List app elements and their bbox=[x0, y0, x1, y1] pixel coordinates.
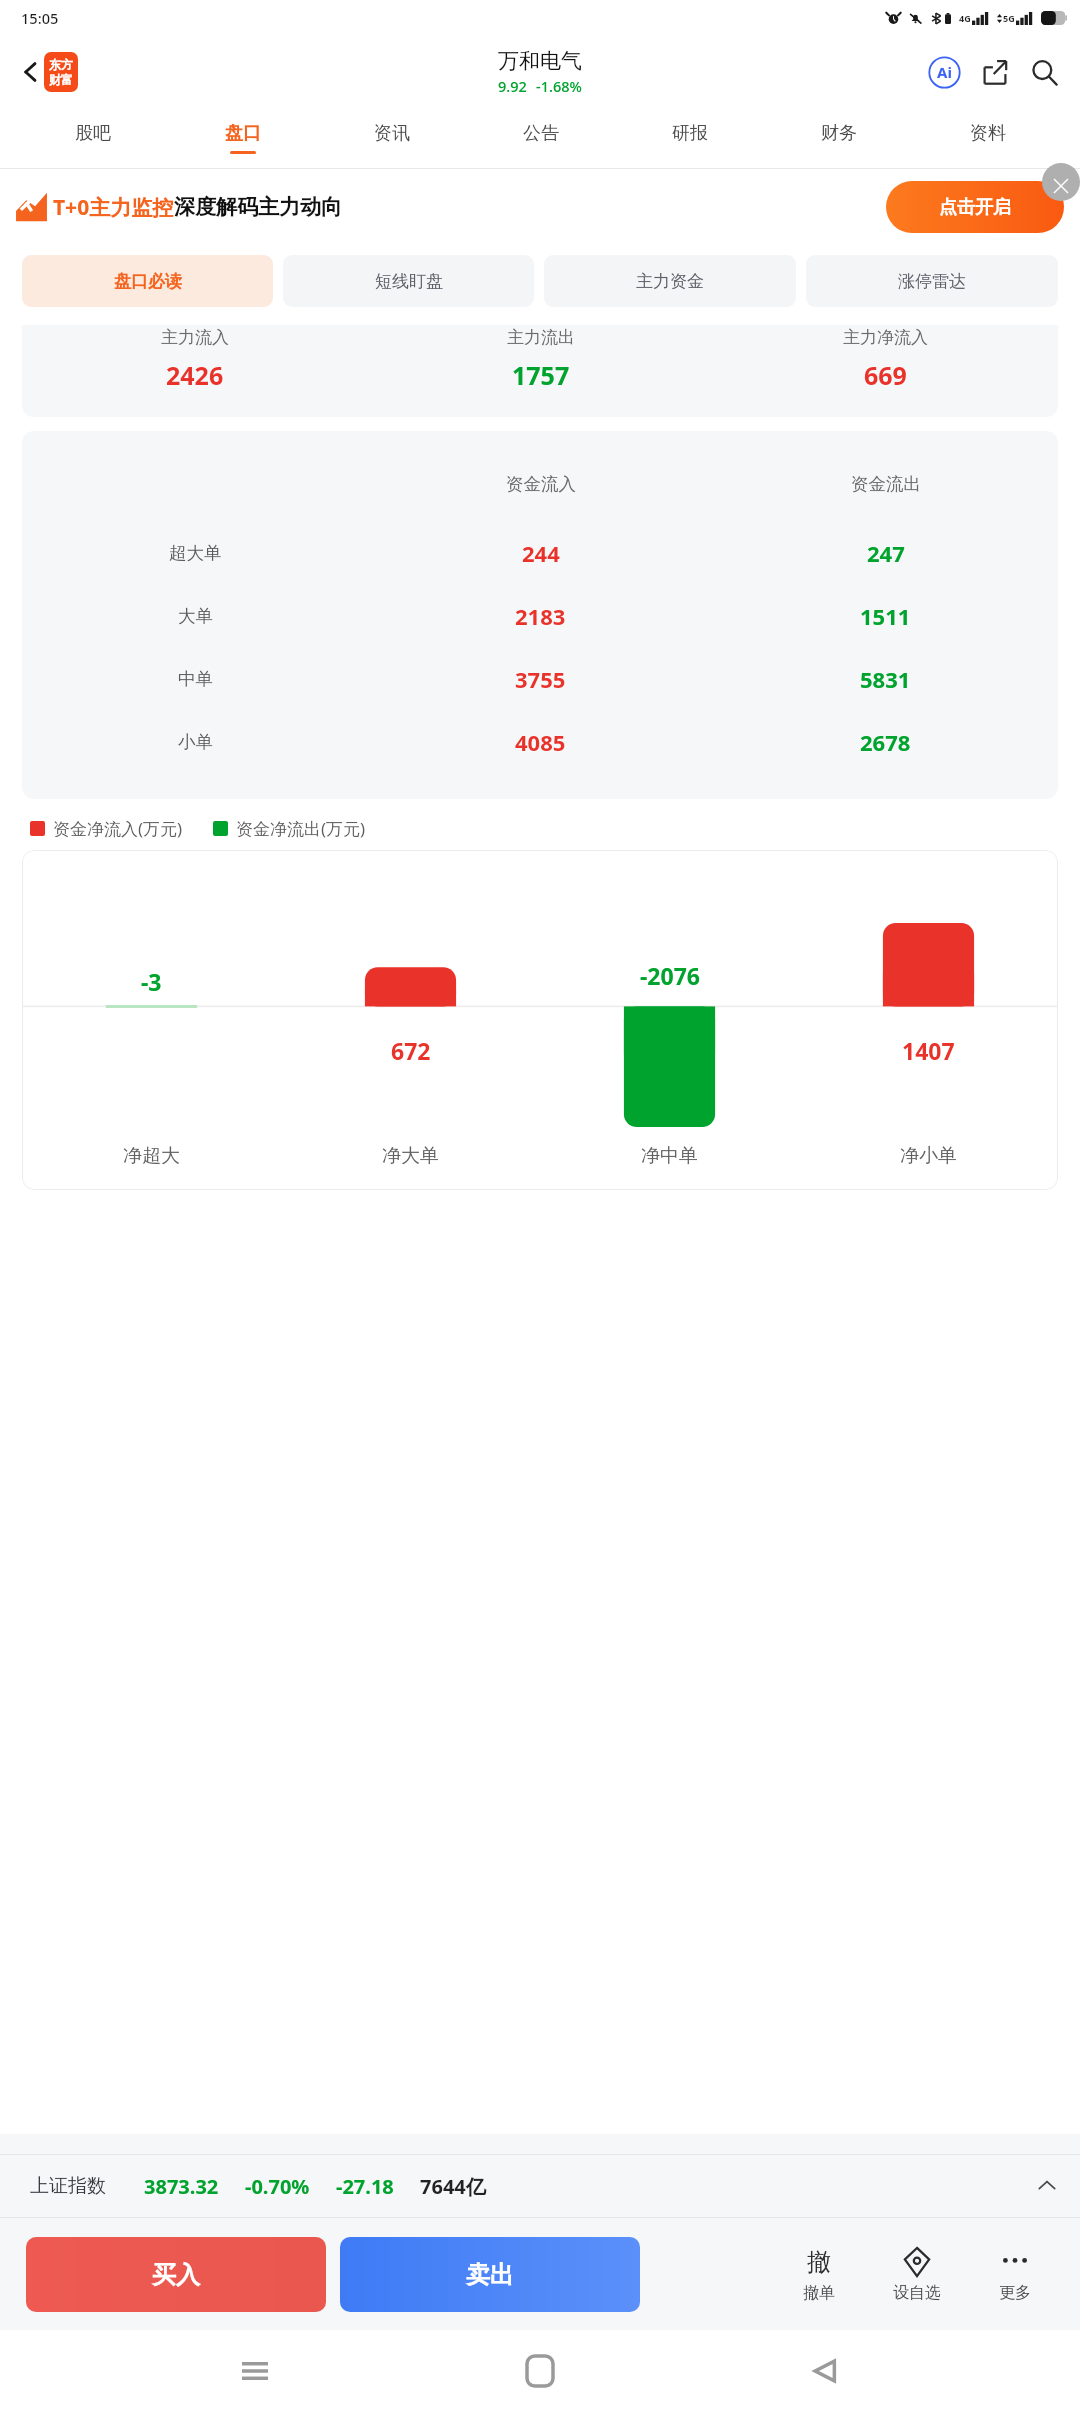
staticText: 4085 bbox=[515, 727, 566, 757]
staticText: 撤单 bbox=[803, 2283, 835, 2303]
button[interactable]: 主力资金 bbox=[544, 255, 796, 307]
staticText: 卖出 bbox=[466, 2260, 514, 2290]
button[interactable]: 点击开启 bbox=[886, 181, 1064, 233]
staticText: 资金流出 bbox=[851, 473, 921, 495]
staticText: 244 bbox=[522, 538, 560, 568]
button[interactable]: Recents bbox=[225, 2341, 285, 2401]
staticText: 3873.32 bbox=[144, 2173, 219, 2200]
staticText: 669 bbox=[864, 358, 907, 392]
staticText: 大单 bbox=[178, 605, 213, 627]
staticText: 9.92 bbox=[498, 76, 527, 96]
staticText: 2183 bbox=[515, 601, 566, 631]
staticText: 深度解码主力动向 bbox=[174, 194, 342, 220]
button[interactable]: 资料 bbox=[913, 108, 1062, 168]
staticText: 财务 bbox=[821, 122, 857, 145]
button[interactable]: 资金流入 bbox=[22, 431, 1058, 799]
staticText: -3 bbox=[141, 966, 162, 997]
staticText: -1.68% bbox=[536, 76, 582, 96]
staticText: 主力流出 bbox=[507, 327, 575, 348]
button[interactable]: 设自选 bbox=[874, 2239, 960, 2309]
button[interactable]: 资讯 bbox=[317, 108, 466, 168]
staticText: 东方 bbox=[49, 57, 73, 72]
staticText: 盘口必读 bbox=[114, 271, 182, 292]
staticText: 2426 bbox=[166, 358, 224, 392]
staticText: 点击开启 bbox=[939, 196, 1011, 219]
button[interactable]: 公告 bbox=[466, 108, 615, 168]
staticText: 5831 bbox=[860, 664, 911, 694]
button[interactable]: 盘口必读 bbox=[22, 255, 273, 307]
button[interactable]: 买入 bbox=[26, 2237, 326, 2312]
button[interactable]: Share bbox=[975, 52, 1015, 92]
staticText: -27.18 bbox=[336, 2173, 394, 2200]
button[interactable]: 财务 bbox=[764, 108, 913, 168]
staticText: 主力净流入 bbox=[843, 327, 928, 348]
staticText: 买入 bbox=[152, 2260, 200, 2290]
staticText: 7644亿 bbox=[420, 2173, 486, 2200]
staticText: Ai bbox=[937, 62, 952, 82]
staticText: 撤 bbox=[807, 2247, 831, 2277]
button[interactable]: 东方财富 bbox=[44, 52, 78, 92]
staticText: 资金净流入(万元) bbox=[53, 817, 183, 840]
staticText: 3755 bbox=[515, 664, 566, 694]
button[interactable]: 短线盯盘 bbox=[283, 255, 534, 307]
staticText: 净大单 bbox=[382, 1144, 439, 1168]
button[interactable]: Search bbox=[1024, 52, 1064, 92]
staticText: -2076 bbox=[640, 960, 700, 991]
staticText: 万和电气 bbox=[498, 48, 582, 74]
staticText: 2678 bbox=[860, 727, 911, 757]
staticText: 小单 bbox=[178, 731, 213, 753]
staticText: 净超大 bbox=[123, 1144, 180, 1168]
staticText: 1511 bbox=[860, 601, 911, 631]
button[interactable]: 卖出 bbox=[340, 2237, 640, 2312]
staticText: 研报 bbox=[672, 122, 708, 145]
staticText: 超大单 bbox=[169, 542, 222, 564]
staticText: 更多 bbox=[999, 2283, 1031, 2303]
button[interactable]: 更多 bbox=[972, 2239, 1058, 2309]
staticText: 短线盯盘 bbox=[375, 271, 443, 292]
button[interactable]: Back bbox=[795, 2341, 855, 2401]
staticText: 5G bbox=[1003, 12, 1015, 24]
staticText: 涨停雷达 bbox=[898, 271, 966, 292]
staticText: 上证指数 bbox=[30, 2174, 106, 2198]
button[interactable]: AI assistant bbox=[924, 52, 964, 92]
staticText: 公告 bbox=[523, 122, 559, 145]
button[interactable]: Back bbox=[14, 55, 48, 89]
button[interactable]: 撤 bbox=[776, 2239, 862, 2309]
staticText: 4G bbox=[959, 12, 971, 24]
staticText: 1407 bbox=[902, 1035, 955, 1066]
staticText: 盘口 bbox=[225, 122, 261, 145]
other: Expand bbox=[1036, 2175, 1058, 2197]
staticText: 中单 bbox=[178, 668, 213, 690]
staticText: 15:05 bbox=[21, 8, 59, 28]
staticText: 设自选 bbox=[893, 2283, 941, 2303]
button[interactable]: Home bbox=[510, 2341, 570, 2401]
staticText: 672 bbox=[391, 1035, 431, 1066]
staticText: -0.70% bbox=[245, 2173, 310, 2200]
staticText: 股吧 bbox=[75, 122, 111, 145]
staticText: 财富 bbox=[49, 72, 73, 87]
staticText: 主力流入 bbox=[161, 327, 229, 348]
button[interactable]: -3 bbox=[22, 850, 1058, 1190]
staticText: 净小单 bbox=[900, 1144, 957, 1168]
staticText: 1757 bbox=[512, 358, 570, 392]
staticText: 247 bbox=[867, 538, 905, 568]
staticText: 资金流入 bbox=[506, 473, 576, 495]
button[interactable]: T+0主力监控 bbox=[0, 169, 1080, 245]
button[interactable]: 涨停雷达 bbox=[806, 255, 1058, 307]
staticText: 资金净流出(万元) bbox=[236, 817, 366, 840]
staticText: 资料 bbox=[970, 122, 1006, 145]
button[interactable]: 股吧 bbox=[18, 108, 168, 168]
staticText: 净中单 bbox=[641, 1144, 698, 1168]
staticText: 资讯 bbox=[374, 122, 410, 145]
button[interactable]: 主力流入 bbox=[22, 325, 1058, 417]
button[interactable]: 研报 bbox=[615, 108, 764, 168]
button[interactable]: 上证指数 bbox=[30, 2155, 1058, 2217]
staticText: T+0主力监控 bbox=[53, 193, 174, 222]
button[interactable]: 盘口 bbox=[168, 108, 317, 168]
button[interactable]: Close ad bbox=[1042, 163, 1080, 201]
staticText: 主力资金 bbox=[636, 271, 704, 292]
